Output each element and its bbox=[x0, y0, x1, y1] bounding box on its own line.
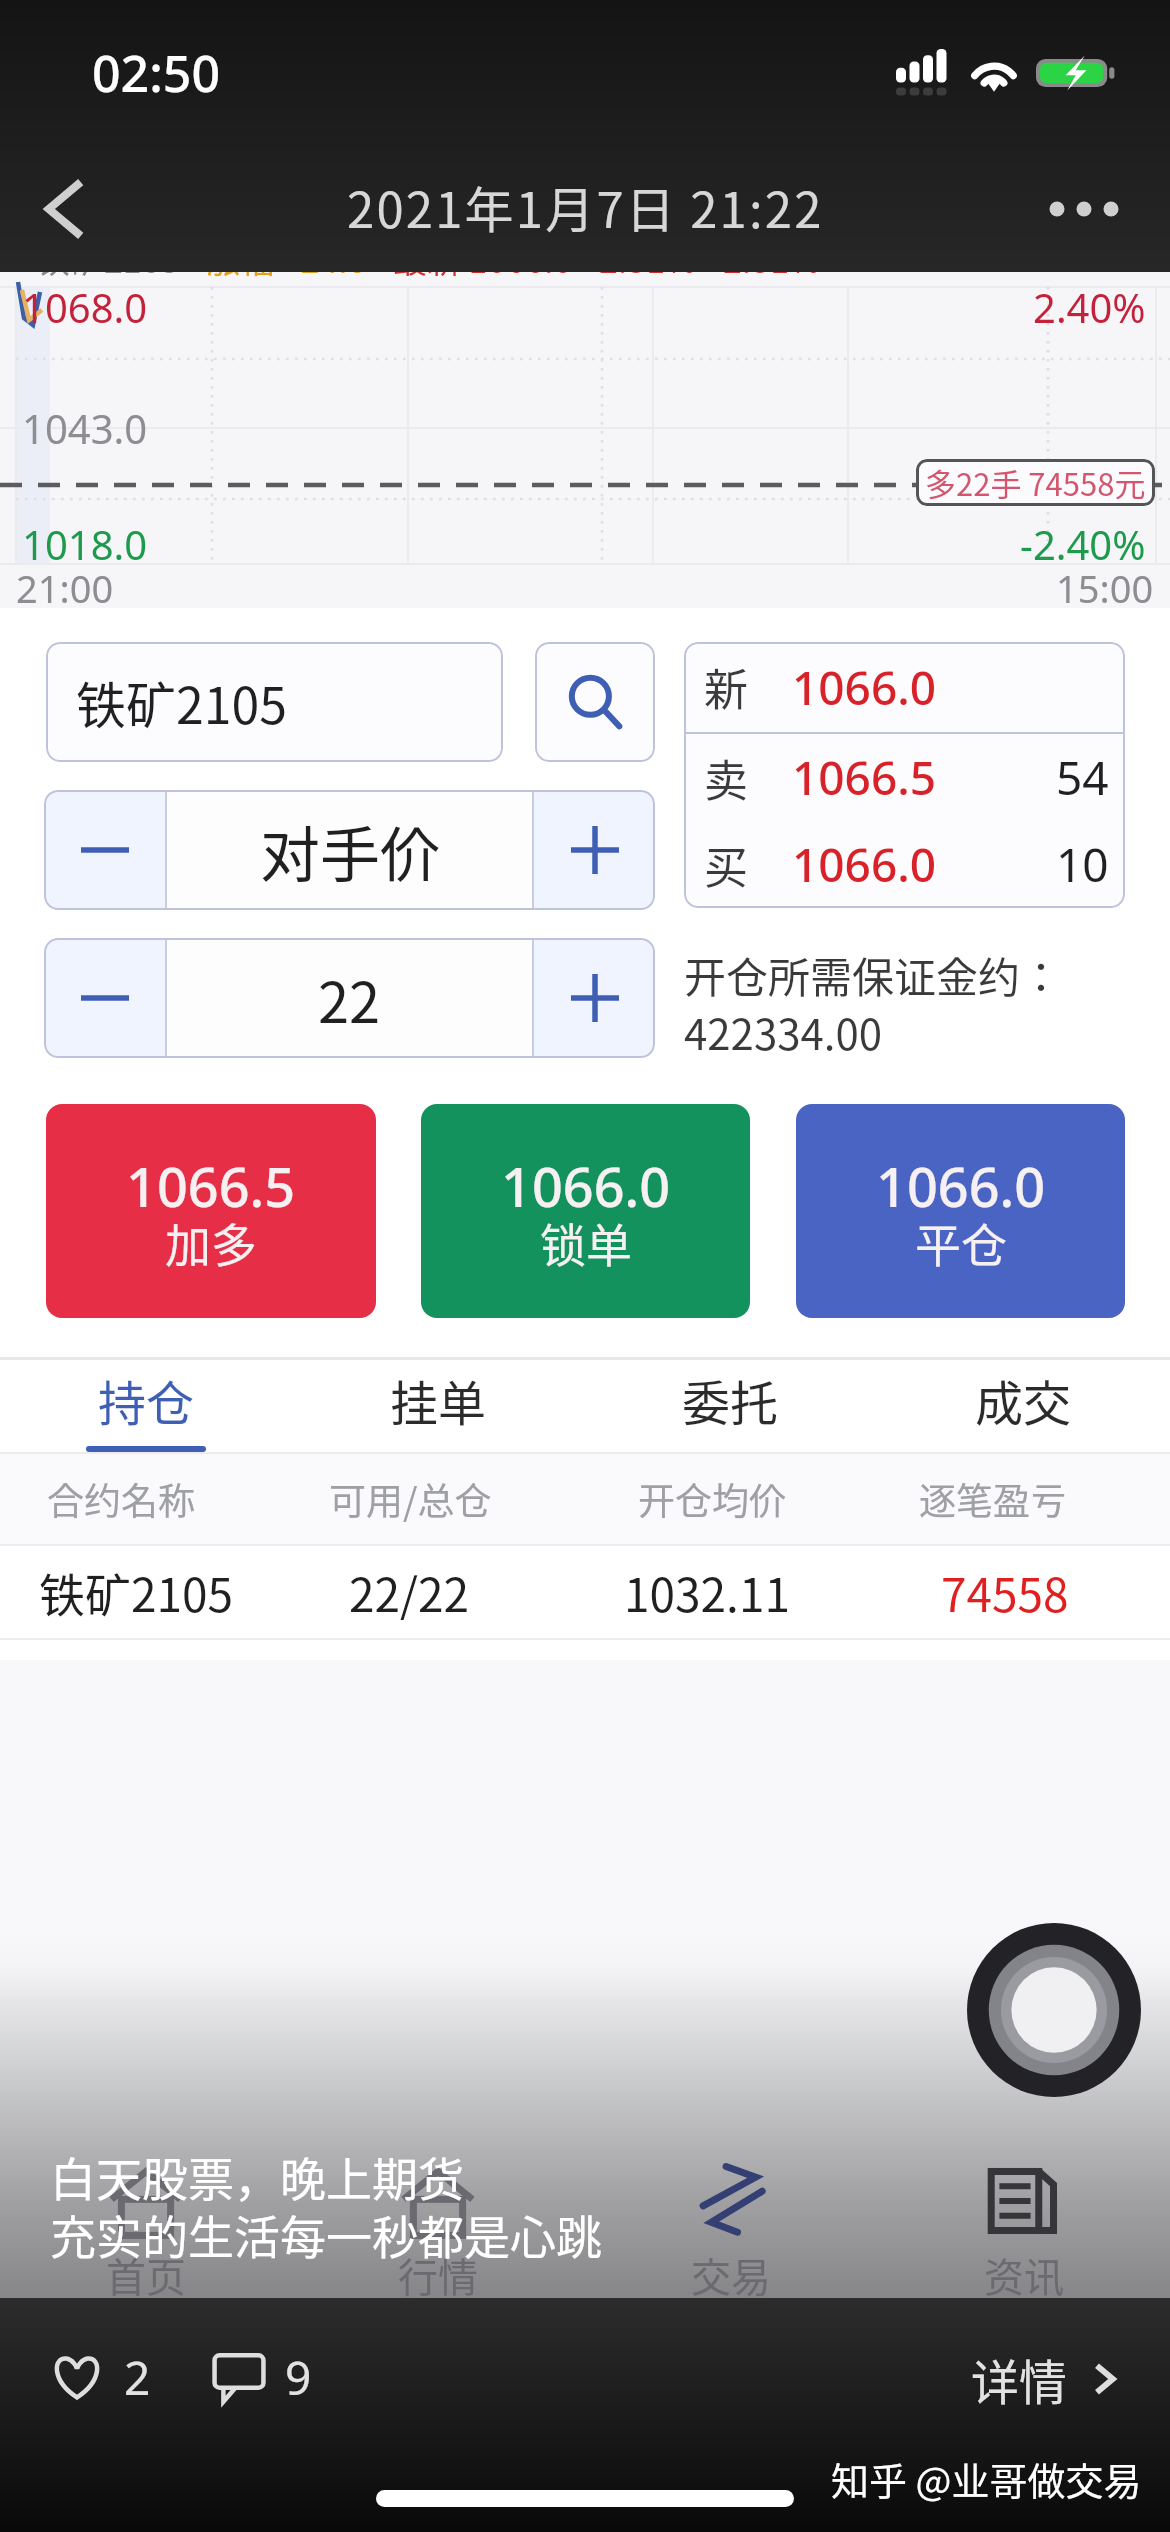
staticText: 10 bbox=[1056, 833, 1109, 896]
button[interactable]: 成交 bbox=[877, 1360, 1170, 1452]
button[interactable]: 持仓 bbox=[0, 1360, 292, 1452]
staticText: 74558 bbox=[941, 1559, 1069, 1626]
button[interactable]: 铁矿2105 bbox=[46, 642, 503, 762]
button[interactable]: 1066.0 bbox=[796, 1104, 1125, 1318]
staticText: 挂单 bbox=[390, 1365, 487, 1435]
staticText: 多22手 74558元 bbox=[925, 460, 1146, 505]
staticText: 2021年1月7日 21:22 bbox=[347, 171, 824, 242]
button[interactable]: 1066.0 bbox=[421, 1104, 750, 1318]
staticText: 1066.5 bbox=[126, 1149, 296, 1223]
staticText: 平仓 bbox=[915, 1209, 1007, 1276]
staticText: 22/22 bbox=[349, 1559, 470, 1626]
button[interactable]: Decrease bbox=[44, 938, 165, 1058]
staticText: 知乎 @业哥做交易 bbox=[831, 2451, 1142, 2506]
staticText: 1043.0 bbox=[22, 401, 148, 455]
button[interactable]: Record bbox=[967, 1923, 1141, 2097]
staticText: 卖 bbox=[704, 746, 748, 810]
staticText: 1066.5 bbox=[792, 746, 937, 809]
button[interactable]: 9 bbox=[213, 2346, 312, 2409]
button[interactable]: 多22手 74558元 bbox=[916, 459, 1155, 506]
staticText: 成交 bbox=[975, 1365, 1072, 1435]
staticText: 2 bbox=[124, 2346, 151, 2409]
staticText: 9 bbox=[285, 2346, 312, 2409]
button[interactable]: 2 bbox=[50, 2346, 151, 2409]
staticText: 铁矿2105 bbox=[76, 666, 287, 738]
button[interactable]: Back bbox=[26, 171, 102, 247]
staticText: 对手价 bbox=[260, 807, 440, 894]
staticText: 15:00 bbox=[1056, 562, 1154, 614]
button[interactable]: 委托 bbox=[584, 1360, 877, 1452]
staticText: 锁单 bbox=[540, 1209, 632, 1276]
staticText: 充实的生活每一秒都是心跳 bbox=[50, 2201, 602, 2268]
staticText: 21:00 bbox=[16, 562, 114, 614]
button[interactable]: 行情 bbox=[292, 2160, 584, 2298]
button[interactable]: 首页 bbox=[0, 2160, 292, 2298]
button[interactable]: 交易 bbox=[584, 2160, 877, 2298]
button[interactable]: Increase bbox=[534, 938, 655, 1058]
staticText: 行情 bbox=[398, 2246, 478, 2298]
staticText: 最新 1066.0 bbox=[393, 272, 573, 283]
staticText: 逐笔盈亏 bbox=[919, 1472, 1067, 1526]
button[interactable]: Search bbox=[535, 642, 655, 762]
staticText: 详情 bbox=[971, 2344, 1068, 2414]
button[interactable]: Increase bbox=[534, 790, 655, 910]
button[interactable]: 22 bbox=[165, 938, 534, 1058]
staticText: 1066.0 bbox=[876, 1149, 1046, 1223]
staticText: 买 bbox=[704, 833, 748, 897]
staticText: 委托 bbox=[682, 1365, 779, 1435]
staticText: 1066.0 bbox=[792, 833, 937, 896]
button[interactable]: Decrease bbox=[44, 790, 165, 910]
staticText: 1066.0 bbox=[792, 656, 937, 719]
staticText: 2.40% bbox=[1033, 280, 1146, 334]
button[interactable]: 铁矿2105 bbox=[0, 1546, 1170, 1638]
staticText: 可用/总仓 bbox=[329, 1472, 492, 1526]
staticText: 02:50 bbox=[92, 39, 220, 107]
staticText: 持仓 bbox=[98, 1365, 195, 1435]
staticText: 涨幅 +24.0 bbox=[206, 272, 367, 283]
staticText: 资讯 bbox=[984, 2246, 1064, 2298]
staticText: -2.40% bbox=[1020, 517, 1146, 571]
staticText: 2.31% bbox=[723, 272, 821, 283]
button[interactable]: 详情 bbox=[971, 2344, 1126, 2414]
staticText: 1068.0 bbox=[22, 280, 148, 334]
staticText: 22 bbox=[318, 958, 381, 1039]
staticText: 铁矿2105 bbox=[36, 272, 180, 283]
staticText: 合约名称 bbox=[47, 1472, 195, 1526]
staticText: 开仓均价 bbox=[638, 1472, 786, 1526]
button[interactable]: More options bbox=[1038, 163, 1130, 255]
button[interactable]: 挂单 bbox=[292, 1360, 584, 1452]
button[interactable]: 资讯 bbox=[877, 2160, 1170, 2298]
staticText: 首页 bbox=[106, 2246, 186, 2298]
staticText: 1066.0 bbox=[501, 1149, 671, 1223]
button[interactable]: 对手价 bbox=[165, 790, 534, 910]
staticText: 新 bbox=[704, 655, 748, 719]
staticText: 铁矿2105 bbox=[39, 1559, 234, 1626]
staticText: 交易 bbox=[691, 2246, 771, 2298]
button[interactable]: 1066.5 bbox=[46, 1104, 376, 1318]
staticText: 1032.11 bbox=[624, 1559, 790, 1626]
staticText: 白天股票，晚上期货 bbox=[50, 2143, 464, 2210]
staticText: 2.31% bbox=[599, 272, 697, 283]
staticText: 54 bbox=[1056, 746, 1109, 809]
staticText: 1018.0 bbox=[22, 517, 148, 571]
staticText: 加多 bbox=[165, 1209, 257, 1276]
staticText: 开仓所需保证金约： 422334.00 bbox=[684, 944, 1063, 1063]
